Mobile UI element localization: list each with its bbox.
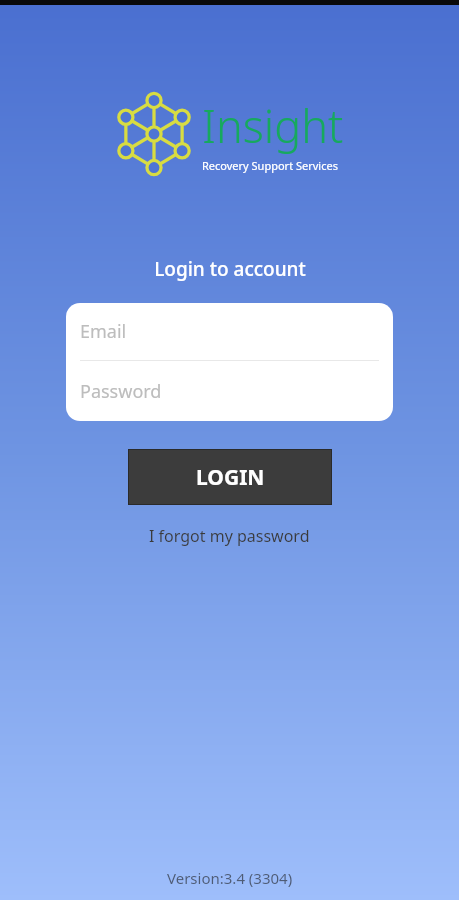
button[interactable]: LOGIN [128, 449, 332, 505]
staticText: Recovery Support Services [202, 158, 338, 173]
staticText: Email [80, 319, 127, 344]
other: Insight logo [116, 91, 192, 177]
staticText: Insight [202, 95, 344, 156]
button[interactable]: I forgot my password [143, 519, 316, 553]
button[interactable]: Email [66, 303, 393, 360]
staticText: Version:3.4 (3304) [167, 868, 293, 888]
staticText: LOGIN [196, 463, 265, 492]
staticText: Login to account [154, 256, 306, 282]
button[interactable]: Password [66, 361, 393, 421]
staticText: Password [80, 379, 162, 404]
staticText: I forgot my password [149, 525, 310, 547]
